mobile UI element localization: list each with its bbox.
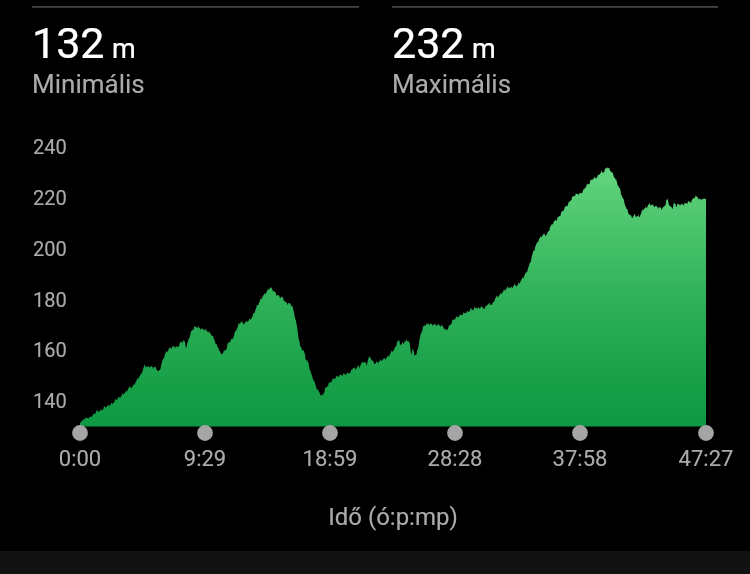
button[interactable]: 9:29 bbox=[145, 446, 265, 472]
button[interactable]: 200 bbox=[33, 237, 67, 260]
staticText: m bbox=[112, 33, 136, 65]
staticText: Maximális bbox=[392, 69, 512, 99]
button[interactable]: 240 bbox=[33, 135, 67, 158]
staticText: Idő (ó:p:mp) bbox=[293, 503, 493, 531]
staticText: Minimális bbox=[32, 69, 145, 99]
staticText: 200 bbox=[33, 237, 67, 260]
staticText: 232 bbox=[392, 18, 465, 68]
staticText: 160 bbox=[33, 338, 67, 361]
staticText: 18:59 bbox=[270, 446, 390, 472]
staticText: 140 bbox=[33, 389, 67, 412]
button[interactable]: 28:28 bbox=[395, 446, 515, 472]
button[interactable]: 220 bbox=[33, 186, 67, 209]
staticText: 47:27 bbox=[646, 446, 750, 472]
staticText: 240 bbox=[33, 135, 67, 158]
other: Elevation chart bbox=[0, 0, 750, 574]
button[interactable]: Idő (ó:p:mp) bbox=[293, 503, 493, 531]
button[interactable]: 18:59 bbox=[270, 446, 390, 472]
staticText: 180 bbox=[33, 288, 67, 311]
button[interactable]: 180 bbox=[33, 288, 67, 311]
staticText: 132 bbox=[32, 18, 105, 68]
staticText: 9:29 bbox=[145, 446, 265, 472]
staticText: 220 bbox=[33, 186, 67, 209]
button[interactable]: 37:58 bbox=[520, 446, 640, 472]
button[interactable]: 132 bbox=[32, 18, 145, 98]
button[interactable]: 140 bbox=[33, 389, 67, 412]
staticText: m bbox=[472, 33, 496, 65]
staticText: 28:28 bbox=[395, 446, 515, 472]
staticText: 0:00 bbox=[20, 446, 140, 472]
button[interactable]: 0:00 bbox=[20, 446, 140, 472]
button[interactable]: 160 bbox=[33, 338, 67, 361]
staticText: 37:58 bbox=[520, 446, 640, 472]
button[interactable]: 47:27 bbox=[646, 446, 750, 472]
button[interactable]: 232 bbox=[392, 18, 512, 98]
